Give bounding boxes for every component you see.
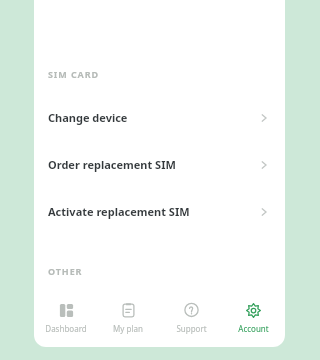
button[interactable]: Account [223,289,283,347]
staticText: Support [176,323,207,334]
other: Support [184,303,199,318]
button[interactable]: Dashboard [36,289,96,347]
other: Dashboard [59,303,74,318]
staticText: Dashboard [45,323,87,334]
staticText: Change device [48,110,259,125]
staticText: Activate replacement SIM [48,204,259,219]
staticText: Order replacement SIM [48,157,259,172]
other: My plan [121,303,136,318]
button[interactable]: Activate replacement SIM [34,188,285,235]
button[interactable]: Support [161,289,221,347]
button[interactable]: Change device [34,94,285,141]
other: Account [246,303,261,318]
staticText: My plan [113,323,143,334]
staticText: Account [238,323,269,334]
button[interactable]: Order replacement SIM [34,141,285,188]
button[interactable]: My plan [98,289,158,347]
staticText: OTHER [48,265,83,277]
staticText: SIM CARD [48,68,99,80]
